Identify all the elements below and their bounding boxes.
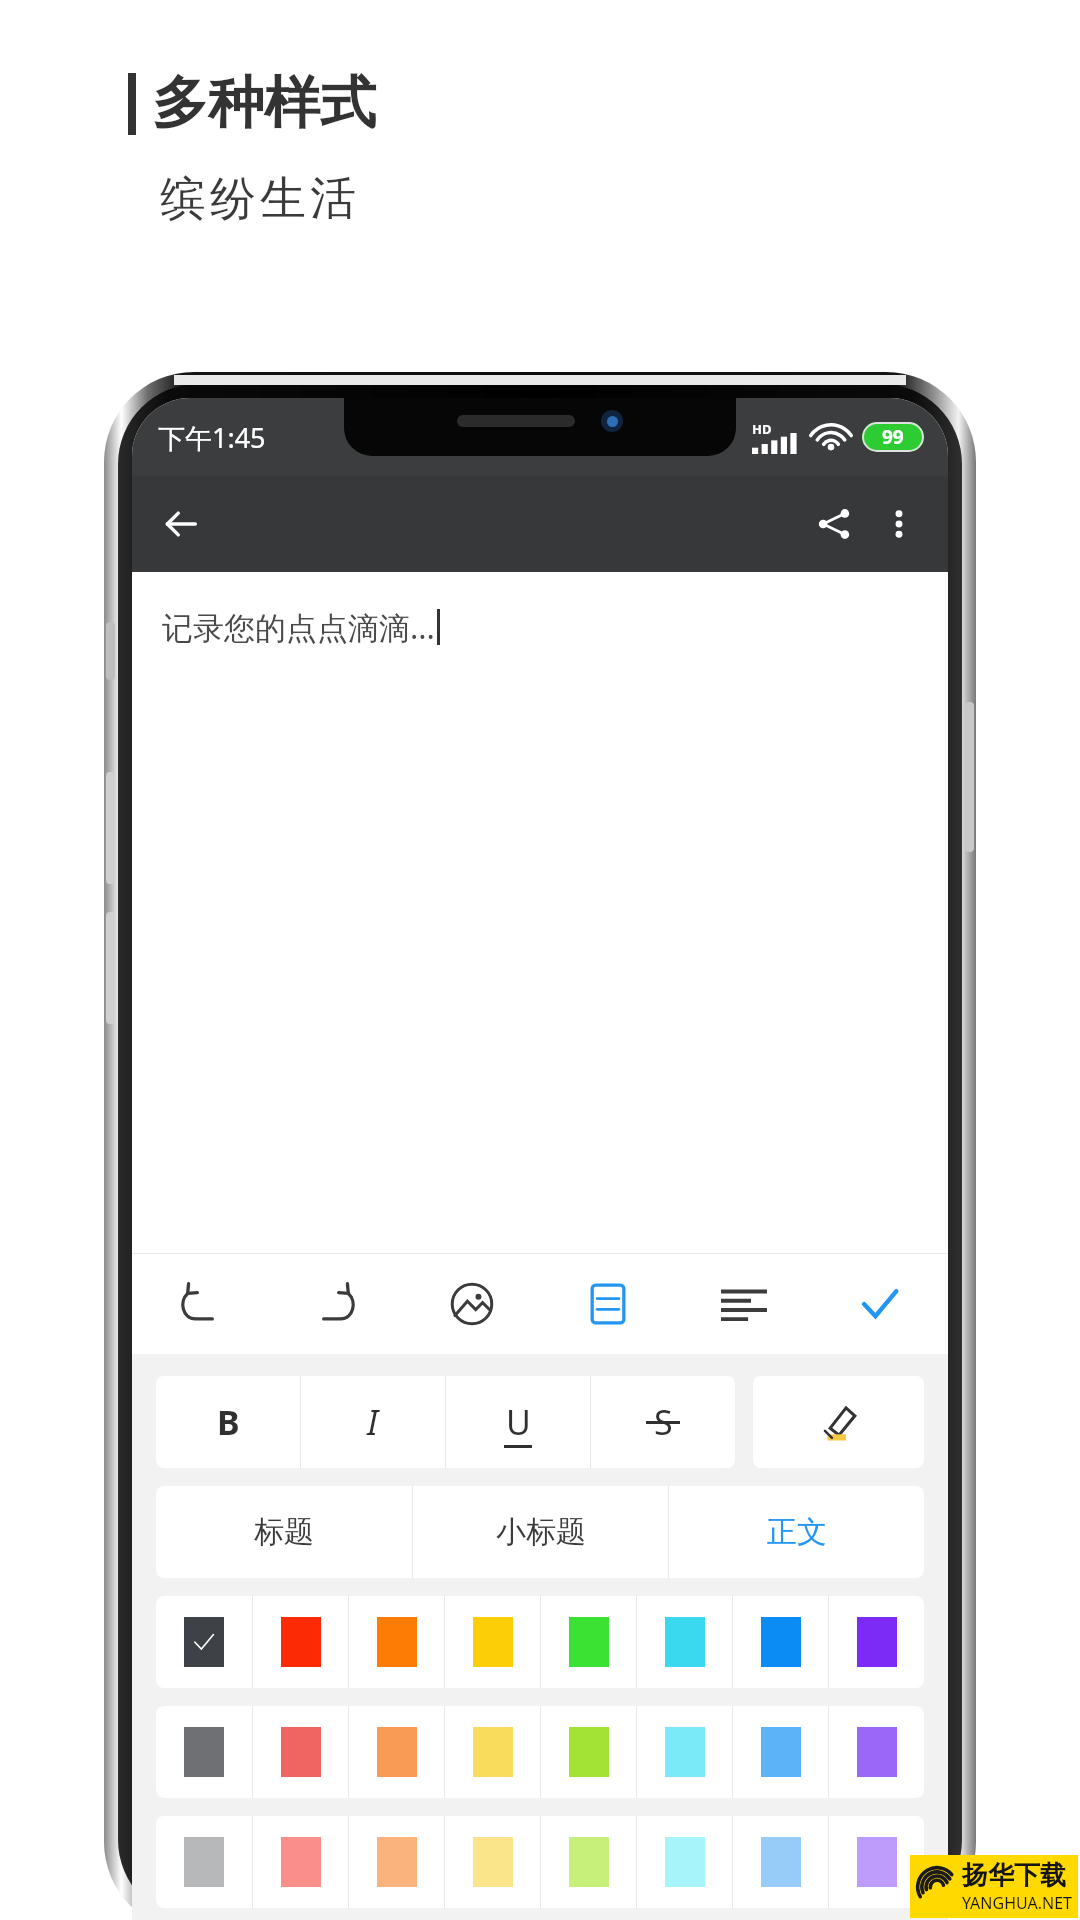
button[interactable]: Back <box>150 493 212 555</box>
button[interactable]: Colour 8 <box>829 1706 924 1798</box>
button[interactable]: Colour 4 <box>445 1596 540 1688</box>
button[interactable]: Colour 1 <box>156 1706 252 1798</box>
button[interactable]: Colour 3 <box>349 1596 444 1688</box>
button[interactable]: Colour 1 <box>156 1816 252 1908</box>
button[interactable]: Redo <box>268 1254 404 1354</box>
staticText: 99 <box>882 424 904 450</box>
staticText: 多种样式 <box>152 68 376 139</box>
staticText: U <box>506 1399 531 1445</box>
button[interactable]: B <box>156 1376 300 1468</box>
staticText: 下午1:45 <box>158 419 266 456</box>
staticText: 扬华下载 <box>962 1859 1066 1892</box>
button[interactable]: Colour 3 <box>349 1816 444 1908</box>
button[interactable]: Colour 8 <box>829 1596 924 1688</box>
button[interactable]: Undo <box>132 1254 268 1354</box>
button[interactable]: Colour 5 <box>541 1816 636 1908</box>
button[interactable]: Colour 7 <box>733 1706 828 1798</box>
staticText: I <box>367 1399 379 1445</box>
staticText: S <box>654 1399 673 1445</box>
button[interactable]: Colour 6 <box>637 1596 732 1688</box>
button[interactable]: Colour 5 <box>541 1596 636 1688</box>
staticText: YANGHUA.NET <box>962 1892 1072 1914</box>
button[interactable]: Share <box>800 490 868 558</box>
button[interactable]: Colour 7 <box>733 1816 828 1908</box>
staticText: 正文 <box>767 1513 827 1551</box>
button[interactable]: Colour 3 <box>349 1706 444 1798</box>
button[interactable]: S <box>591 1376 735 1468</box>
button[interactable]: Colour 2 <box>253 1706 348 1798</box>
button[interactable]: Insert image <box>404 1254 540 1354</box>
button[interactable]: Align <box>676 1254 812 1354</box>
button[interactable]: Colour 2 <box>253 1596 348 1688</box>
staticText: 标题 <box>254 1513 314 1551</box>
staticText: HD <box>752 420 772 438</box>
button[interactable]: Text style <box>540 1254 676 1354</box>
button[interactable]: Colour 2 <box>253 1816 348 1908</box>
button[interactable]: U <box>446 1376 590 1468</box>
button[interactable]: Colour 4 <box>445 1706 540 1798</box>
button[interactable]: I <box>301 1376 445 1468</box>
button[interactable]: Colour 4 <box>445 1816 540 1908</box>
staticText: 缤纷生活 <box>158 170 358 228</box>
button[interactable]: 小标题 <box>413 1486 668 1578</box>
button[interactable]: 正文 <box>669 1486 924 1578</box>
staticText: 记录您的点点滴滴... <box>162 606 435 648</box>
button[interactable]: Colour 5 <box>541 1706 636 1798</box>
staticText: B <box>217 1399 240 1445</box>
button[interactable]: Colour 8 <box>829 1816 924 1908</box>
button[interactable]: Colour 6 <box>637 1706 732 1798</box>
button[interactable]: Highlighter <box>753 1376 924 1468</box>
button[interactable]: Colour 1 <box>156 1596 252 1688</box>
button[interactable]: Done <box>812 1254 948 1354</box>
button[interactable]: 标题 <box>156 1486 412 1578</box>
button[interactable]: Colour 6 <box>637 1816 732 1908</box>
button[interactable]: Colour 7 <box>733 1596 828 1688</box>
staticText: 小标题 <box>496 1513 586 1551</box>
button[interactable]: More options <box>868 493 930 555</box>
